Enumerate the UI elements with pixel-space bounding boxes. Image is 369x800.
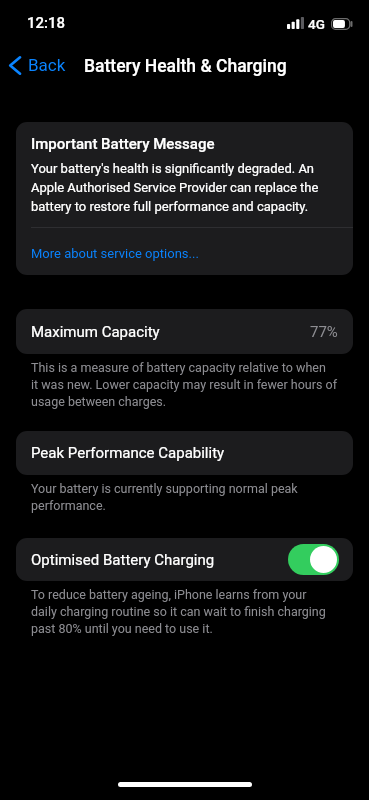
- staticText: 77%: [310, 323, 338, 341]
- staticText: Maximum Capacity: [31, 323, 160, 341]
- staticText: Your battery is currently supporting nor…: [31, 480, 298, 514]
- staticText: 4G: [308, 18, 325, 32]
- staticText: Your battery's health is significantly d…: [31, 158, 319, 215]
- button[interactable]: Back: [0, 49, 74, 81]
- staticText: Optimised Battery Charging: [31, 551, 215, 569]
- staticText: Important Battery Message: [31, 133, 215, 153]
- button[interactable]: More about service options...: [16, 228, 353, 275]
- button[interactable]: Peak Performance Capability: [16, 431, 353, 475]
- button[interactable]: Optimised Battery Charging toggle: [288, 544, 339, 575]
- staticText: To reduce battery ageing, iPhone learns …: [31, 586, 326, 637]
- button[interactable]: Optimised Battery Charging: [16, 538, 353, 581]
- staticText: More about service options...: [31, 245, 199, 261]
- staticText: Battery Health & Charging: [84, 55, 287, 76]
- staticText: Back: [28, 55, 66, 75]
- button[interactable]: Maximum Capacity: [16, 309, 353, 354]
- staticText: 12:18: [27, 14, 66, 32]
- staticText: Peak Performance Capability: [31, 444, 225, 462]
- staticText: This is a measure of battery capacity re…: [31, 359, 338, 410]
